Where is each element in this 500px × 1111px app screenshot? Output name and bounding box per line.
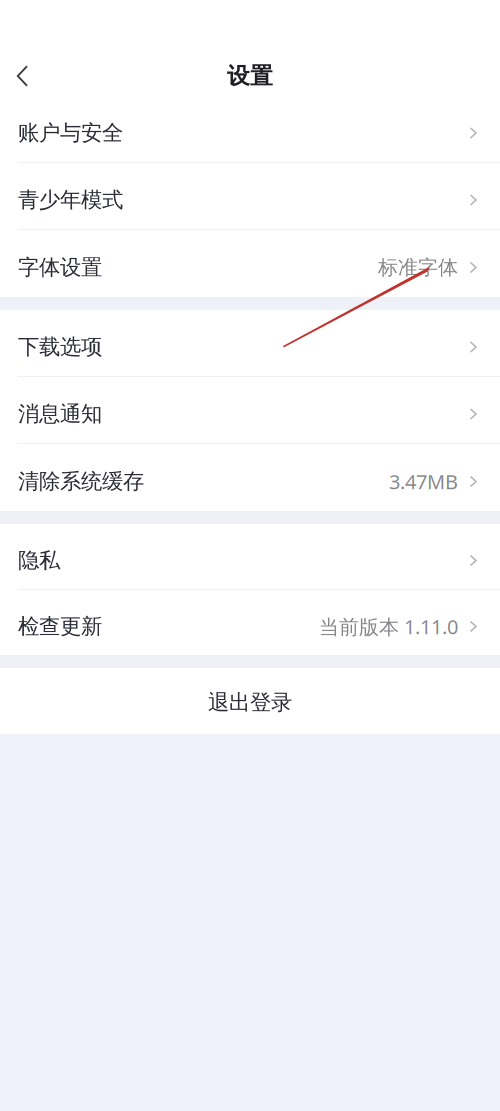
staticText: 账户与安全 <box>18 120 123 146</box>
staticText: 标准字体 <box>378 255 458 280</box>
button[interactable]: Back <box>0 53 45 99</box>
staticText: 消息通知 <box>18 401 102 427</box>
staticText: 青少年模式 <box>18 187 123 213</box>
button[interactable]: 青少年模式 <box>0 163 500 230</box>
staticText: 设置 <box>227 62 273 90</box>
button[interactable]: 隐私 <box>0 524 500 590</box>
button[interactable]: 检查更新 <box>0 590 500 655</box>
staticText: 清除系统缓存 <box>18 468 144 495</box>
staticText: 字体设置 <box>18 254 102 281</box>
button[interactable]: 消息通知 <box>0 377 500 444</box>
button[interactable]: 账户与安全 <box>0 96 500 163</box>
staticText: 检查更新 <box>18 613 102 640</box>
staticText: 3.47MB <box>389 468 458 495</box>
staticText: 下载选项 <box>18 334 102 360</box>
staticText: 当前版本 1.11.0 <box>319 613 458 640</box>
button[interactable]: 退出登录 <box>0 668 500 734</box>
staticText: 隐私 <box>18 547 60 574</box>
button[interactable]: 清除系统缓存 <box>0 444 500 511</box>
button[interactable]: 下载选项 <box>0 310 500 377</box>
staticText: 退出登录 <box>208 689 292 716</box>
button[interactable]: 字体设置 <box>0 230 500 297</box>
